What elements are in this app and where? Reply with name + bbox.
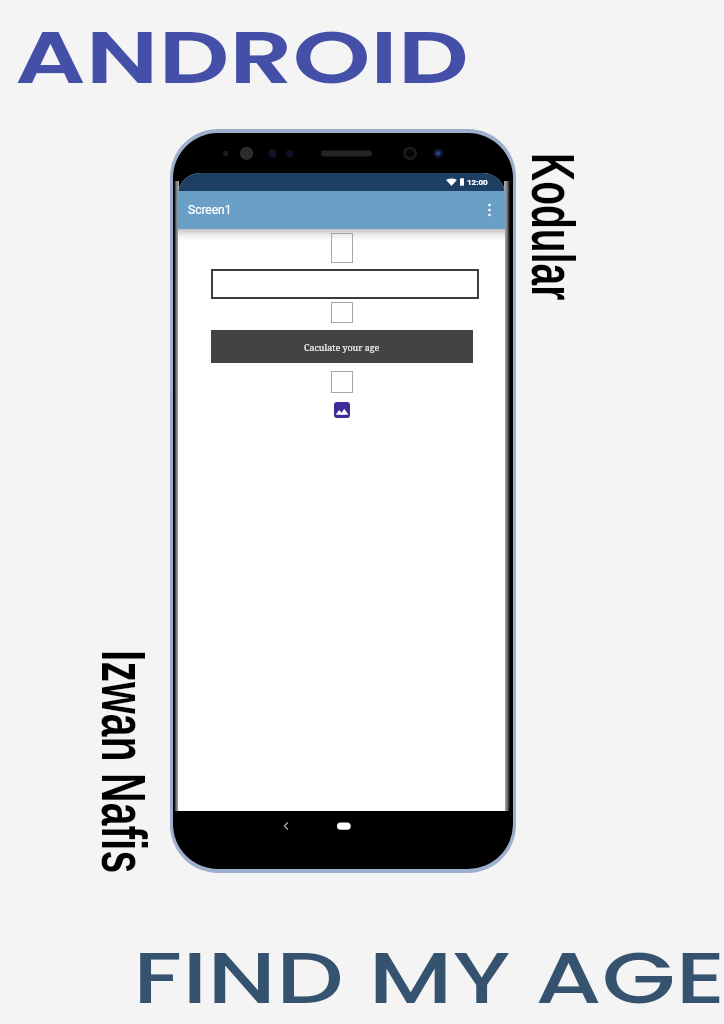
staticText: ANDROID: [15, 7, 469, 108]
staticText: 12:00: [467, 178, 488, 187]
button[interactable]: More options: [479, 200, 499, 220]
staticText: Izwan Nafis: [89, 650, 159, 874]
staticText: FIND MY AGE: [133, 927, 724, 1024]
staticText: Caculate your age: [304, 341, 380, 353]
button[interactable]: Image: [334, 402, 350, 418]
button[interactable]: Back: [276, 816, 296, 836]
button[interactable]: Home: [331, 816, 357, 836]
button[interactable]: [211, 269, 479, 299]
button[interactable]: Screen1: [178, 191, 505, 229]
staticText: Screen1: [188, 203, 232, 217]
staticText: Kodular: [518, 153, 587, 301]
button[interactable]: Caculate your age: [211, 330, 473, 363]
